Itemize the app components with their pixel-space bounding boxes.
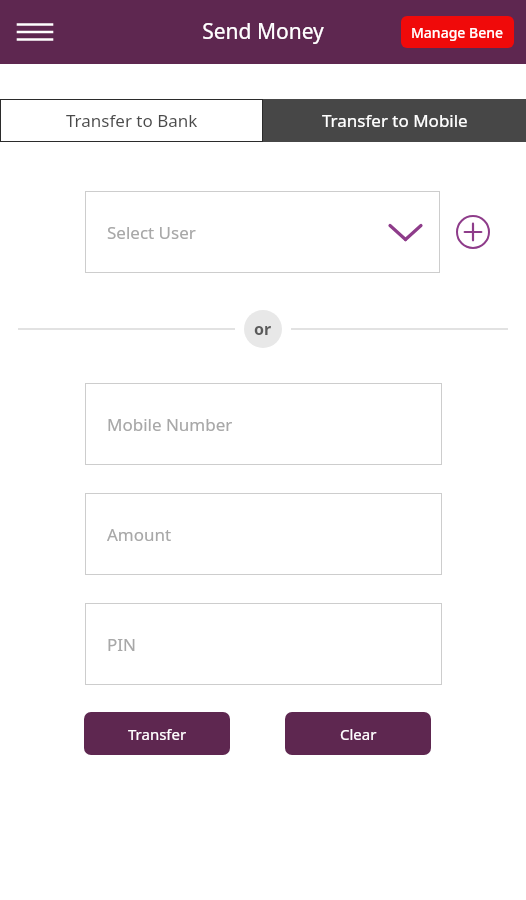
button[interactable]: Add beneficiary	[456, 215, 490, 249]
staticText: Amount	[107, 523, 172, 546]
button[interactable]: Select User	[85, 191, 440, 273]
staticText: Manage Bene	[411, 23, 504, 42]
staticText: Transfer	[128, 724, 187, 744]
button[interactable]: Mobile Number	[85, 383, 442, 465]
staticText: PIN	[107, 633, 136, 656]
staticText: Transfer to Bank	[66, 109, 198, 132]
staticText: Transfer to Mobile	[322, 109, 468, 132]
button[interactable]: Transfer	[84, 712, 230, 755]
staticText: or	[254, 318, 272, 340]
button[interactable]: Transfer to Bank	[0, 99, 263, 142]
button[interactable]: PIN	[85, 603, 442, 685]
staticText: Send Money	[202, 17, 324, 46]
staticText: Select User	[107, 221, 196, 244]
staticText: Mobile Number	[107, 413, 233, 436]
button[interactable]: Transfer to Mobile	[263, 99, 526, 142]
staticText: Clear	[340, 724, 377, 744]
button[interactable]: Manage Bene	[401, 16, 514, 48]
button[interactable]: Clear	[285, 712, 431, 755]
button[interactable]: Amount	[85, 493, 442, 575]
button[interactable]: Open navigation menu	[12, 12, 58, 52]
